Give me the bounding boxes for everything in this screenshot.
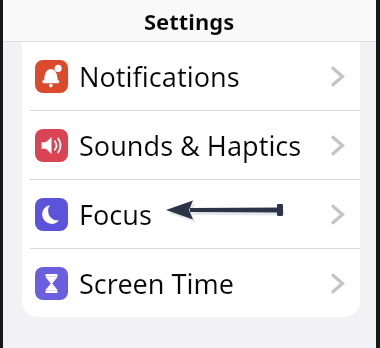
other: Open Screen Time bbox=[331, 273, 344, 294]
staticText: Settings bbox=[144, 6, 235, 36]
button[interactable]: Focus bbox=[22, 180, 360, 248]
button[interactable]: Sounds & Haptics bbox=[22, 111, 360, 179]
other: Open Sounds & Haptics bbox=[331, 135, 344, 156]
other: Open Notifications bbox=[331, 66, 344, 87]
staticText: Focus bbox=[79, 196, 152, 233]
staticText: Sounds & Haptics bbox=[79, 127, 302, 164]
staticText: Screen Time bbox=[79, 265, 235, 302]
staticText: Notifications bbox=[79, 58, 240, 95]
other: Open Focus bbox=[331, 204, 344, 225]
button[interactable]: Notifications bbox=[22, 42, 360, 110]
button[interactable]: Screen Time bbox=[22, 249, 360, 317]
